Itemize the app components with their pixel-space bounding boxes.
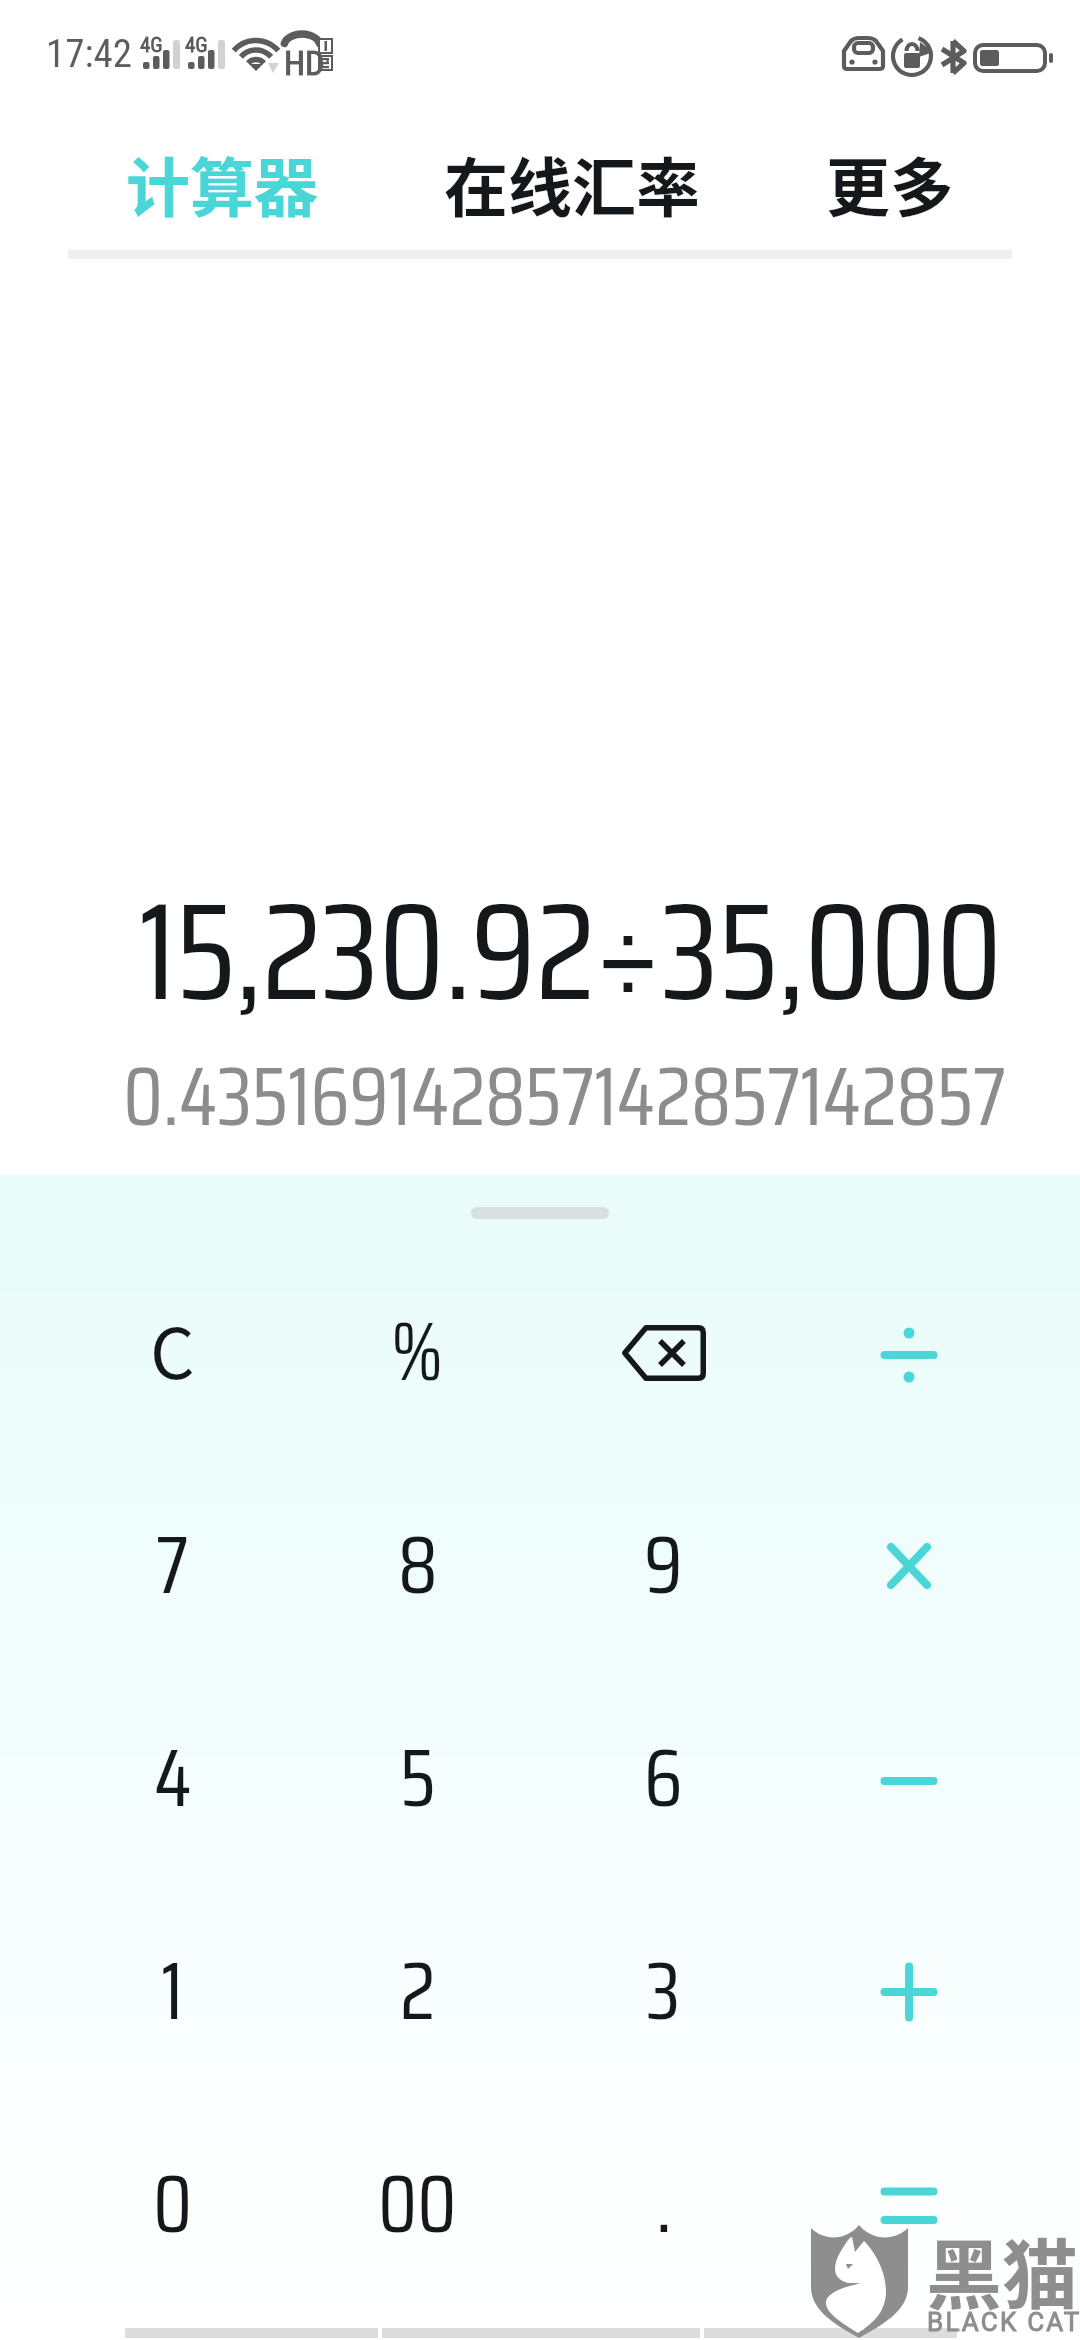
button[interactable]: Subtract <box>786 1672 1031 1885</box>
button[interactable]: 更多 <box>826 128 954 238</box>
staticText: 0.435169142857142857142857 <box>0 1032 1006 1161</box>
staticText: 5 <box>400 1714 436 1841</box>
button[interactable]: 1 <box>50 1885 295 2098</box>
staticText: 更多 <box>826 137 954 230</box>
staticText: HD <box>284 43 325 83</box>
button[interactable]: C <box>50 1246 295 1459</box>
staticText: 9 <box>644 1501 683 1628</box>
staticText: 在线汇率 <box>444 137 700 230</box>
button[interactable]: Multiply <box>786 1459 1031 1672</box>
staticText: 4G <box>140 33 163 58</box>
staticText: 2 <box>400 1927 436 2054</box>
staticText: 7 <box>156 1501 189 1628</box>
button[interactable]: . <box>541 2098 786 2311</box>
staticText: 4G <box>185 33 208 58</box>
staticText: 0 <box>153 2140 193 2267</box>
button[interactable]: Backspace <box>541 1246 786 1459</box>
staticText: 17:42 <box>46 31 133 77</box>
staticText: C <box>150 1298 195 1399</box>
button[interactable]: 9 <box>541 1459 786 1672</box>
staticText: BLACK CAT <box>927 2307 1080 2337</box>
button[interactable]: 计算器 <box>126 128 318 238</box>
staticText: 00 <box>378 2140 457 2267</box>
staticText: 15,230.92÷35,000 <box>0 845 1002 1059</box>
button[interactable]: Equals <box>786 2098 1031 2311</box>
staticText: 6 <box>644 1714 683 1841</box>
button[interactable]: 4 <box>50 1672 295 1885</box>
button[interactable]: 6 <box>541 1672 786 1885</box>
button[interactable]: 7 <box>50 1459 295 1672</box>
staticText: 8 <box>398 1501 438 1628</box>
button[interactable]: 8 <box>295 1459 540 1672</box>
staticText: 4 <box>154 1714 192 1841</box>
staticText: 3 <box>646 1927 681 2054</box>
button[interactable]: 2 <box>295 1885 540 2098</box>
staticText: 计算器 <box>126 137 318 230</box>
button[interactable]: 0 <box>50 2098 295 2311</box>
staticText: % <box>391 1287 444 1416</box>
staticText: . <box>656 2140 672 2267</box>
button[interactable]: Add <box>786 1885 1031 2098</box>
button[interactable]: 00 <box>295 2098 540 2311</box>
button[interactable]: 5 <box>295 1672 540 1885</box>
button[interactable]: Divide <box>786 1246 1031 1459</box>
button[interactable]: 3 <box>541 1885 786 2098</box>
button[interactable]: % <box>295 1246 540 1459</box>
button[interactable]: 在线汇率 <box>444 128 700 238</box>
staticText: 1 <box>161 1927 184 2054</box>
staticText: 黑猫 <box>926 2215 1078 2325</box>
